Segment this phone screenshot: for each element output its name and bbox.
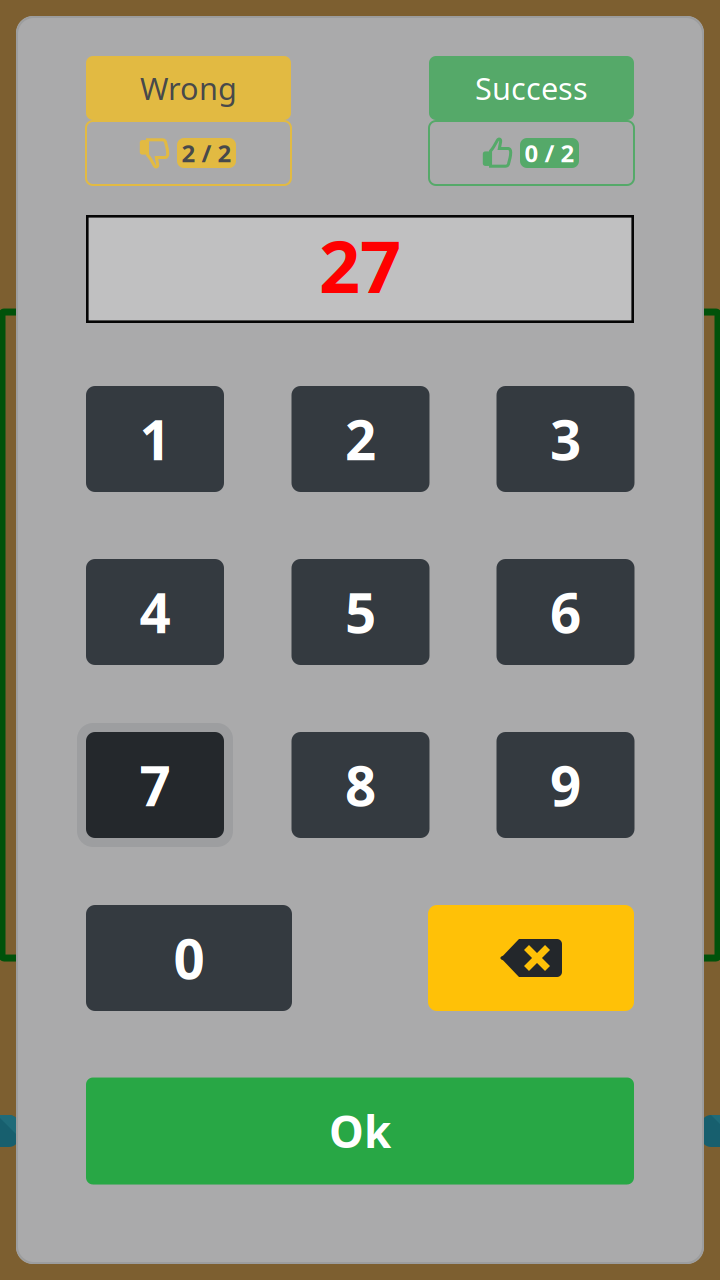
- button[interactable]: 3: [496, 386, 634, 492]
- button[interactable]: Delete: [428, 905, 634, 1011]
- staticText: 5: [345, 576, 376, 648]
- button[interactable]: 7: [86, 732, 224, 838]
- staticText: 0 / 2: [524, 137, 574, 169]
- button[interactable]: 5: [291, 559, 429, 665]
- button[interactable]: 0: [86, 905, 292, 1011]
- staticText: Wrong: [140, 68, 237, 108]
- button[interactable]: Ok: [86, 1077, 634, 1184]
- staticText: 2: [345, 403, 376, 475]
- staticText: 9: [550, 749, 581, 821]
- button[interactable]: 2: [291, 386, 429, 492]
- button[interactable]: 4: [86, 559, 224, 665]
- button[interactable]: 8: [291, 732, 429, 838]
- staticText: 1: [139, 403, 170, 475]
- staticText: 3: [550, 403, 581, 475]
- staticText: 7: [139, 749, 170, 821]
- staticText: 8: [345, 749, 376, 821]
- button[interactable]: 6: [496, 559, 634, 665]
- staticText: Success: [475, 68, 588, 108]
- button[interactable]: 1: [86, 386, 224, 492]
- staticText: 6: [550, 576, 581, 648]
- button[interactable]: 9: [496, 732, 634, 838]
- staticText: Ok: [329, 1102, 391, 1160]
- staticText: 27: [319, 217, 401, 313]
- staticText: 4: [139, 576, 170, 648]
- staticText: 0: [173, 922, 204, 994]
- staticText: 2 / 2: [181, 137, 231, 169]
